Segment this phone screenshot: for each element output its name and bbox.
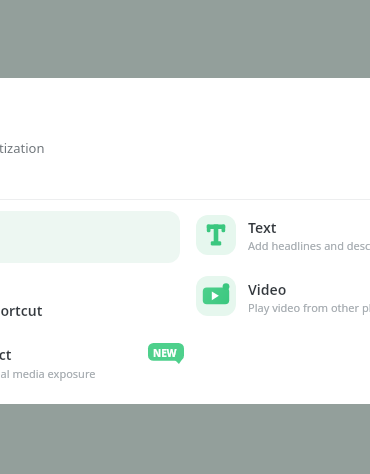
staticText: Product — [0, 345, 12, 364]
staticText: Play video from other platform — [248, 300, 370, 315]
staticText: Add headlines and descriptions — [248, 238, 370, 253]
staticText: NEW — [153, 346, 177, 360]
staticText: Text — [248, 218, 277, 237]
staticText: Monetization — [0, 139, 45, 157]
button[interactable]: Video — [196, 276, 236, 316]
button[interactable]: Text — [196, 215, 236, 255]
button[interactable]: Product — [0, 345, 12, 364]
button[interactable]: Add shortcut — [0, 301, 43, 320]
button[interactable] — [190, 209, 370, 261]
staticText: Add shortcut — [0, 301, 43, 320]
staticText: Video — [248, 280, 287, 299]
button[interactable] — [190, 271, 370, 323]
staticText: Boost social media exposure — [0, 366, 96, 381]
